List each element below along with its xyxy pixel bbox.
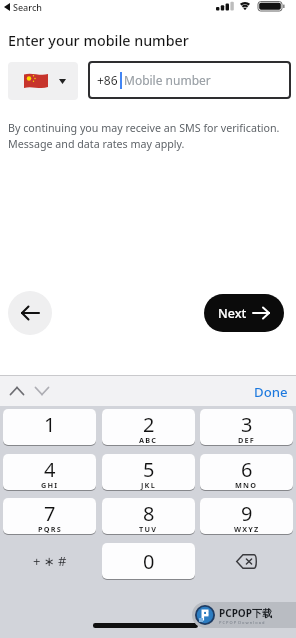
staticText: + ∗ # [33,552,67,570]
staticText: Search [13,1,42,13]
button[interactable]: 2 [102,409,195,445]
staticText: ABC [139,435,158,445]
button[interactable]: Done [254,383,288,401]
button[interactable]: Search [4,1,42,13]
staticText: 1 [44,411,56,438]
staticText: 4 [44,456,56,483]
staticText: Done [254,383,288,401]
staticText: TUV [139,524,158,534]
staticText: WXYZ [234,524,260,534]
staticText: 5 [143,456,155,483]
button[interactable]: 6 [200,454,293,490]
button[interactable]: + ∗ # [3,543,96,579]
button[interactable]: 7 [3,498,96,534]
button[interactable] [8,62,78,100]
staticText: 3 [241,411,253,438]
staticText: JKL [141,480,156,490]
staticText: +86 [97,72,118,88]
staticText: DEF [238,435,256,445]
button[interactable]: Next [204,294,284,332]
staticText: 9 [241,500,253,527]
staticText: 6 [241,456,253,483]
staticText: MNO [235,480,258,490]
staticText: By continuing you may receive an SMS for… [8,121,280,151]
staticText: PCPOP下载 [219,606,272,620]
staticText: 7 [44,500,56,527]
button[interactable]: 5 [102,454,195,490]
button[interactable]: 4 [3,454,96,490]
button[interactable] [10,387,24,395]
button[interactable] [35,387,49,395]
button[interactable]: +86 [88,61,291,99]
staticText: Next [218,305,247,322]
button[interactable]: 0 [102,543,195,579]
button[interactable] [200,543,293,579]
staticText: 2 [143,411,155,438]
staticText: P C P O P D o w n l o a d [219,620,265,625]
staticText: PQRS [38,524,62,534]
button[interactable]: 8 [102,498,195,534]
button[interactable]: 3 [200,409,293,445]
button[interactable] [8,291,52,335]
staticText: Enter your mobile number [8,31,189,50]
staticText: 0 [143,548,155,575]
staticText: Mobile number [124,72,211,88]
button[interactable]: 1 [3,409,96,445]
staticText: GHI [41,480,59,490]
button[interactable]: 9 [200,498,293,534]
staticText: 8 [143,500,155,527]
